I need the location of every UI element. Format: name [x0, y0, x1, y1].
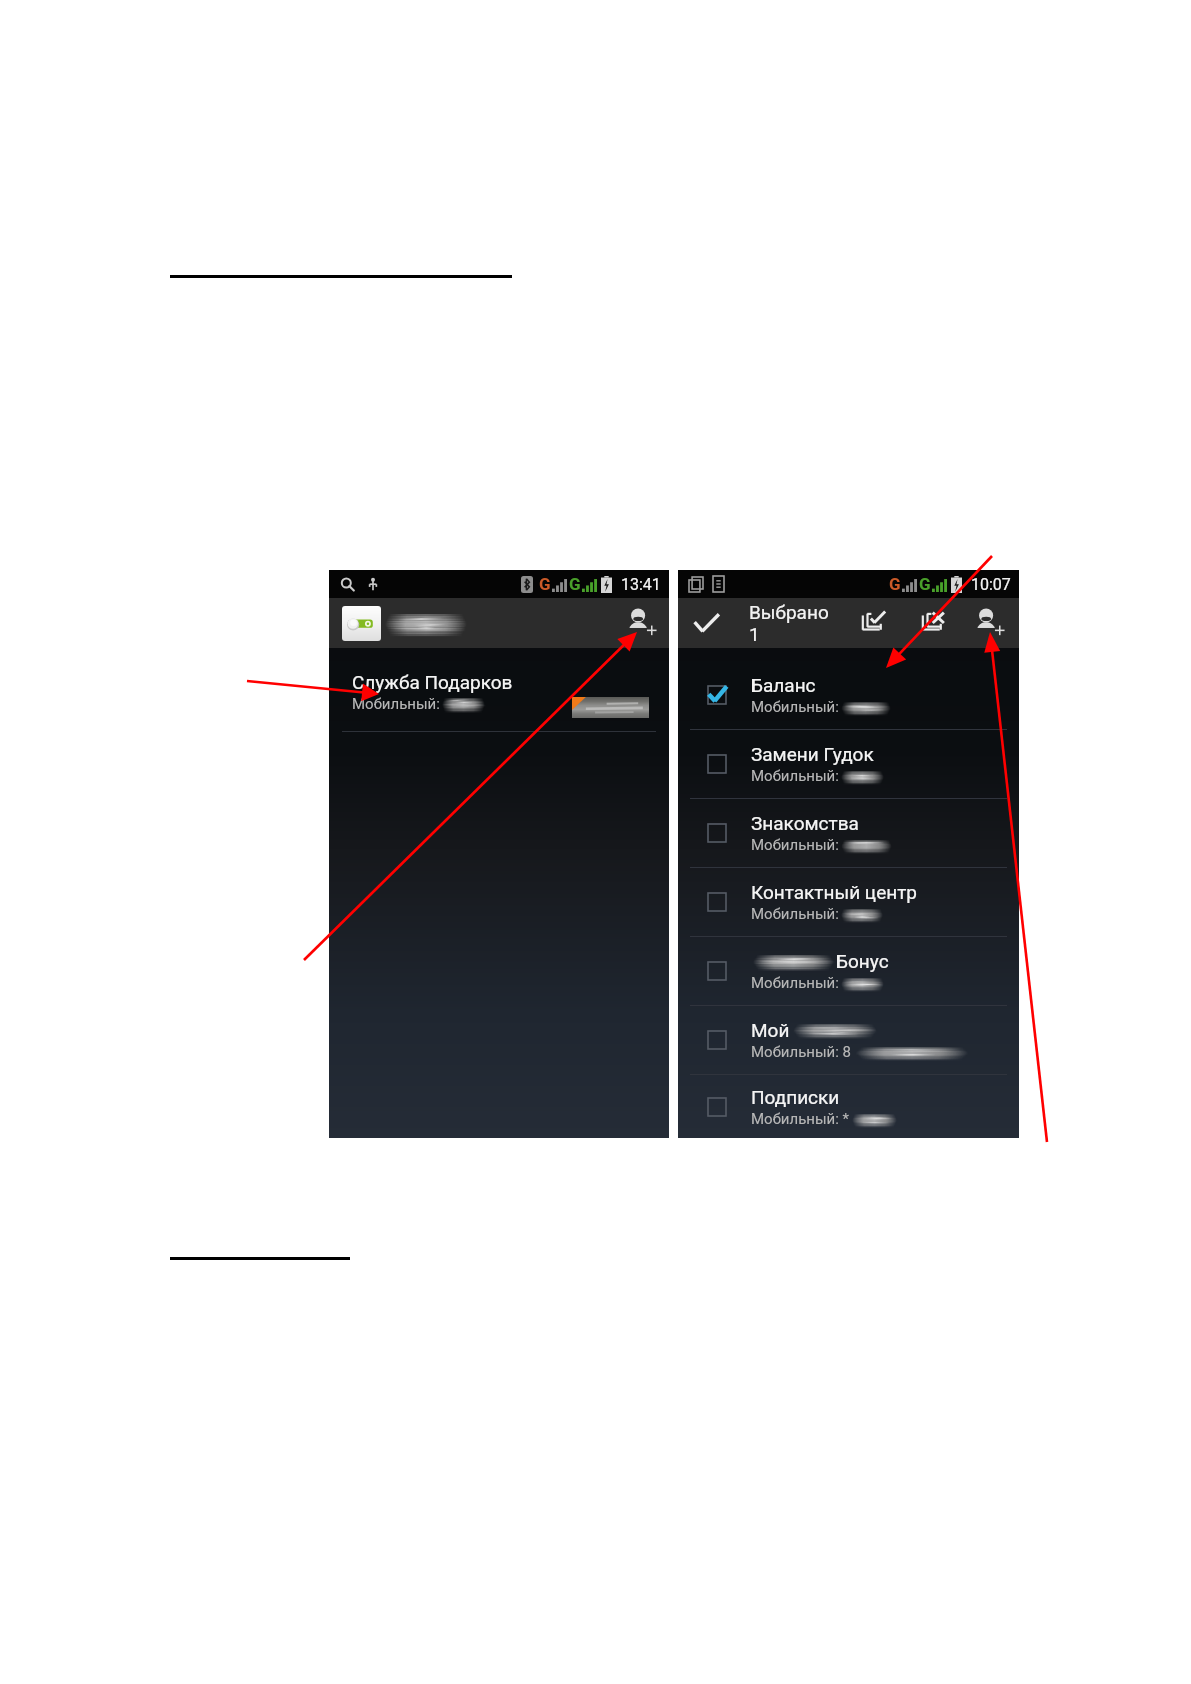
button[interactable]: Deselect all	[904, 598, 964, 648]
button[interactable]: Замени Гудок	[678, 730, 1019, 798]
button[interactable]: Бонус	[678, 937, 1019, 1005]
staticText: 1	[749, 623, 760, 645]
staticText: Подписки	[751, 1086, 840, 1108]
button[interactable]: Done	[681, 598, 731, 648]
button[interactable]: Баланс	[678, 661, 1019, 729]
staticText: Мой	[751, 1019, 790, 1041]
staticText: Служба Подарков	[352, 671, 513, 693]
staticText: Выбрано	[749, 601, 829, 623]
staticText: Мобильный: *	[751, 1110, 850, 1128]
staticText: Мобильный:	[751, 767, 839, 785]
staticText: Бонус	[836, 950, 889, 972]
staticText: Мобильный:	[751, 698, 839, 716]
button[interactable]: Add contact	[329, 598, 669, 648]
button[interactable]: Контактный центр	[678, 868, 1019, 936]
button[interactable]: Add contact	[964, 598, 1015, 648]
staticText: Мобильный:	[352, 695, 440, 713]
staticText: Мобильный: 8	[751, 1043, 852, 1061]
staticText: Мобильный:	[751, 974, 839, 992]
staticText: Мобильный:	[751, 905, 839, 923]
staticText: G	[919, 574, 931, 594]
staticText: 13:41	[621, 575, 661, 594]
button[interactable]: Знакомства	[678, 799, 1019, 867]
button[interactable]: Select all	[844, 598, 904, 648]
staticText: G	[539, 574, 551, 594]
staticText: Знакомства	[751, 812, 859, 834]
button[interactable]: Add contact	[619, 598, 665, 648]
staticText: Баланс	[751, 674, 816, 696]
button[interactable]: Подписки	[678, 1075, 1019, 1138]
staticText: Замени Гудок	[751, 743, 874, 765]
button[interactable]: Мой	[678, 1006, 1019, 1074]
staticText: Мобильный:	[751, 836, 839, 854]
staticText: G	[569, 574, 581, 594]
staticText: G	[889, 574, 901, 594]
staticText: 10:07	[971, 575, 1011, 594]
button[interactable]: Служба Подарков	[329, 648, 669, 732]
staticText: Контактный центр	[751, 881, 917, 903]
